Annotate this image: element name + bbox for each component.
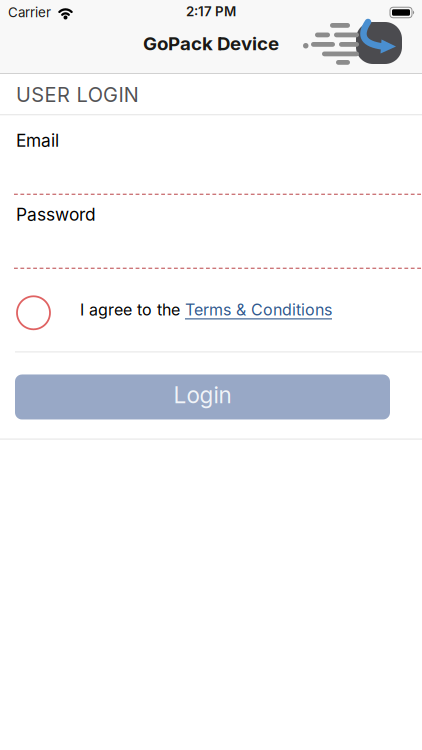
staticText: Carrier bbox=[8, 5, 51, 20]
staticText: Login bbox=[173, 382, 231, 408]
staticText: Terms & Conditions bbox=[185, 300, 332, 319]
button[interactable]: Password bbox=[0, 195, 422, 269]
button[interactable]: Email bbox=[0, 115, 422, 195]
staticText: USER LOGIN bbox=[16, 83, 139, 107]
staticText: Password bbox=[16, 204, 96, 225]
staticText: 2:17 PM bbox=[186, 4, 236, 19]
button[interactable]: Login bbox=[15, 374, 390, 419]
button[interactable]: Agree to the Terms and Conditions bbox=[17, 296, 50, 329]
staticText: GoPack Device bbox=[143, 32, 279, 54]
staticText: I agree to the bbox=[80, 300, 185, 319]
button[interactable]: Terms & Conditions bbox=[185, 300, 332, 319]
staticText: Email bbox=[16, 130, 59, 151]
